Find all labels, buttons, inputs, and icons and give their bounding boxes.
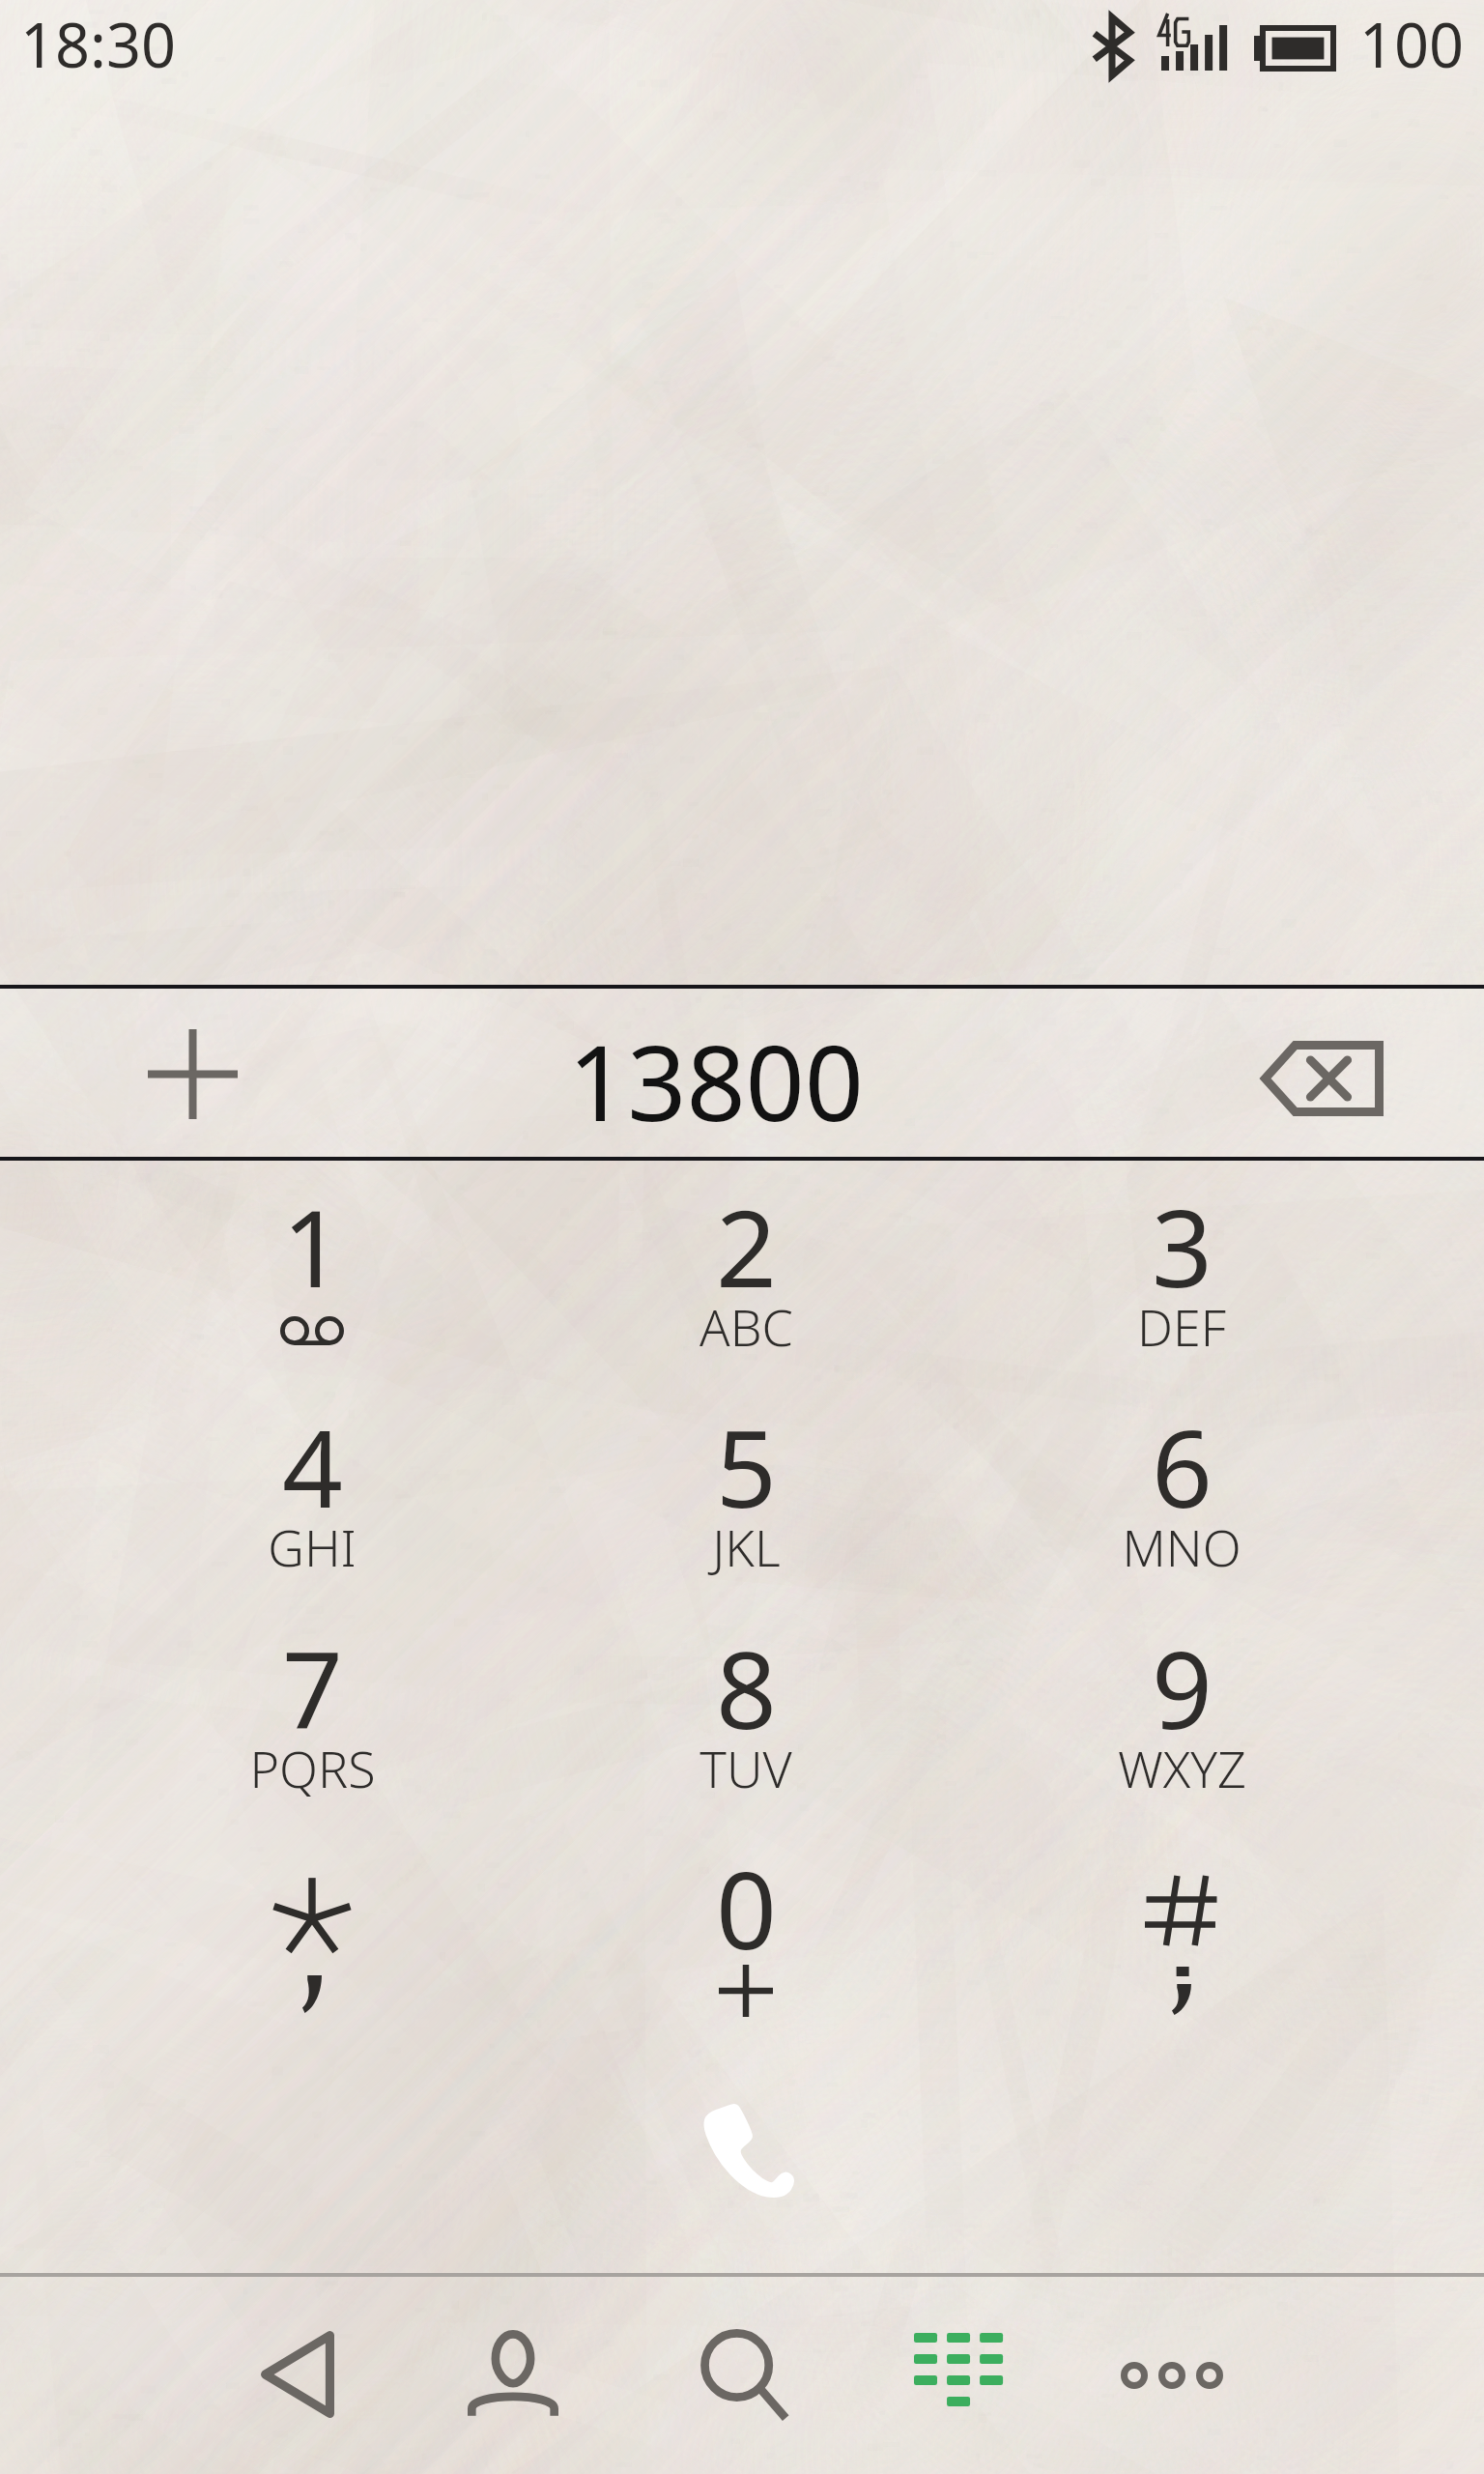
staticText: 1 [282, 1173, 343, 1318]
button[interactable]: 4 GHI [100, 1390, 525, 1610]
staticText: GHI [268, 1512, 357, 1581]
staticText: 5 [716, 1394, 777, 1539]
staticText: PQRS [249, 1734, 376, 1802]
button[interactable]: 1 [100, 1169, 525, 1390]
button[interactable]: Backspace [1208, 988, 1484, 1156]
button[interactable]: Search [636, 2277, 848, 2474]
staticText: 100 [1359, 3, 1465, 86]
button[interactable]: 5 JKL [533, 1390, 958, 1610]
button[interactable]: # ; [969, 1831, 1394, 2052]
staticText: 8 [716, 1615, 777, 1760]
staticText: DEF [1137, 1292, 1226, 1361]
staticText: 7 [282, 1615, 343, 1760]
button[interactable]: 2 ABC [533, 1169, 958, 1390]
staticText: 0 [716, 1835, 777, 1980]
button[interactable]: 0 + [533, 1831, 958, 2052]
button[interactable]: More [1065, 2277, 1277, 2474]
button[interactable]: 6 MNO [969, 1390, 1394, 1610]
staticText: JKL [712, 1512, 781, 1581]
button[interactable]: 3 DEF [969, 1169, 1394, 1390]
button[interactable]: Add [56, 988, 327, 1156]
button[interactable]: Call [597, 2057, 887, 2250]
staticText: TUV [699, 1734, 792, 1802]
staticText: WXYZ [1118, 1734, 1246, 1802]
staticText: ABC [699, 1292, 793, 1361]
button[interactable]: 8 TUV [533, 1611, 958, 1831]
staticText: 6 [1152, 1394, 1213, 1539]
staticText: 9 [1152, 1615, 1213, 1760]
staticText: 18:30 [20, 3, 177, 86]
staticText: 2 [716, 1173, 777, 1318]
button[interactable]: Dialpad [851, 2277, 1064, 2474]
button[interactable]: Contacts [407, 2277, 619, 2474]
button[interactable]: Back [193, 2277, 406, 2474]
button[interactable]: 9 WXYZ [969, 1611, 1394, 1831]
staticText: 4 [282, 1394, 343, 1539]
staticText: 3 [1152, 1173, 1213, 1318]
staticText: MNO [1122, 1512, 1241, 1581]
button[interactable]: * , [100, 1831, 525, 2052]
staticText: 13800 [568, 1011, 865, 1152]
button[interactable]: 7 PQRS [100, 1611, 525, 1831]
